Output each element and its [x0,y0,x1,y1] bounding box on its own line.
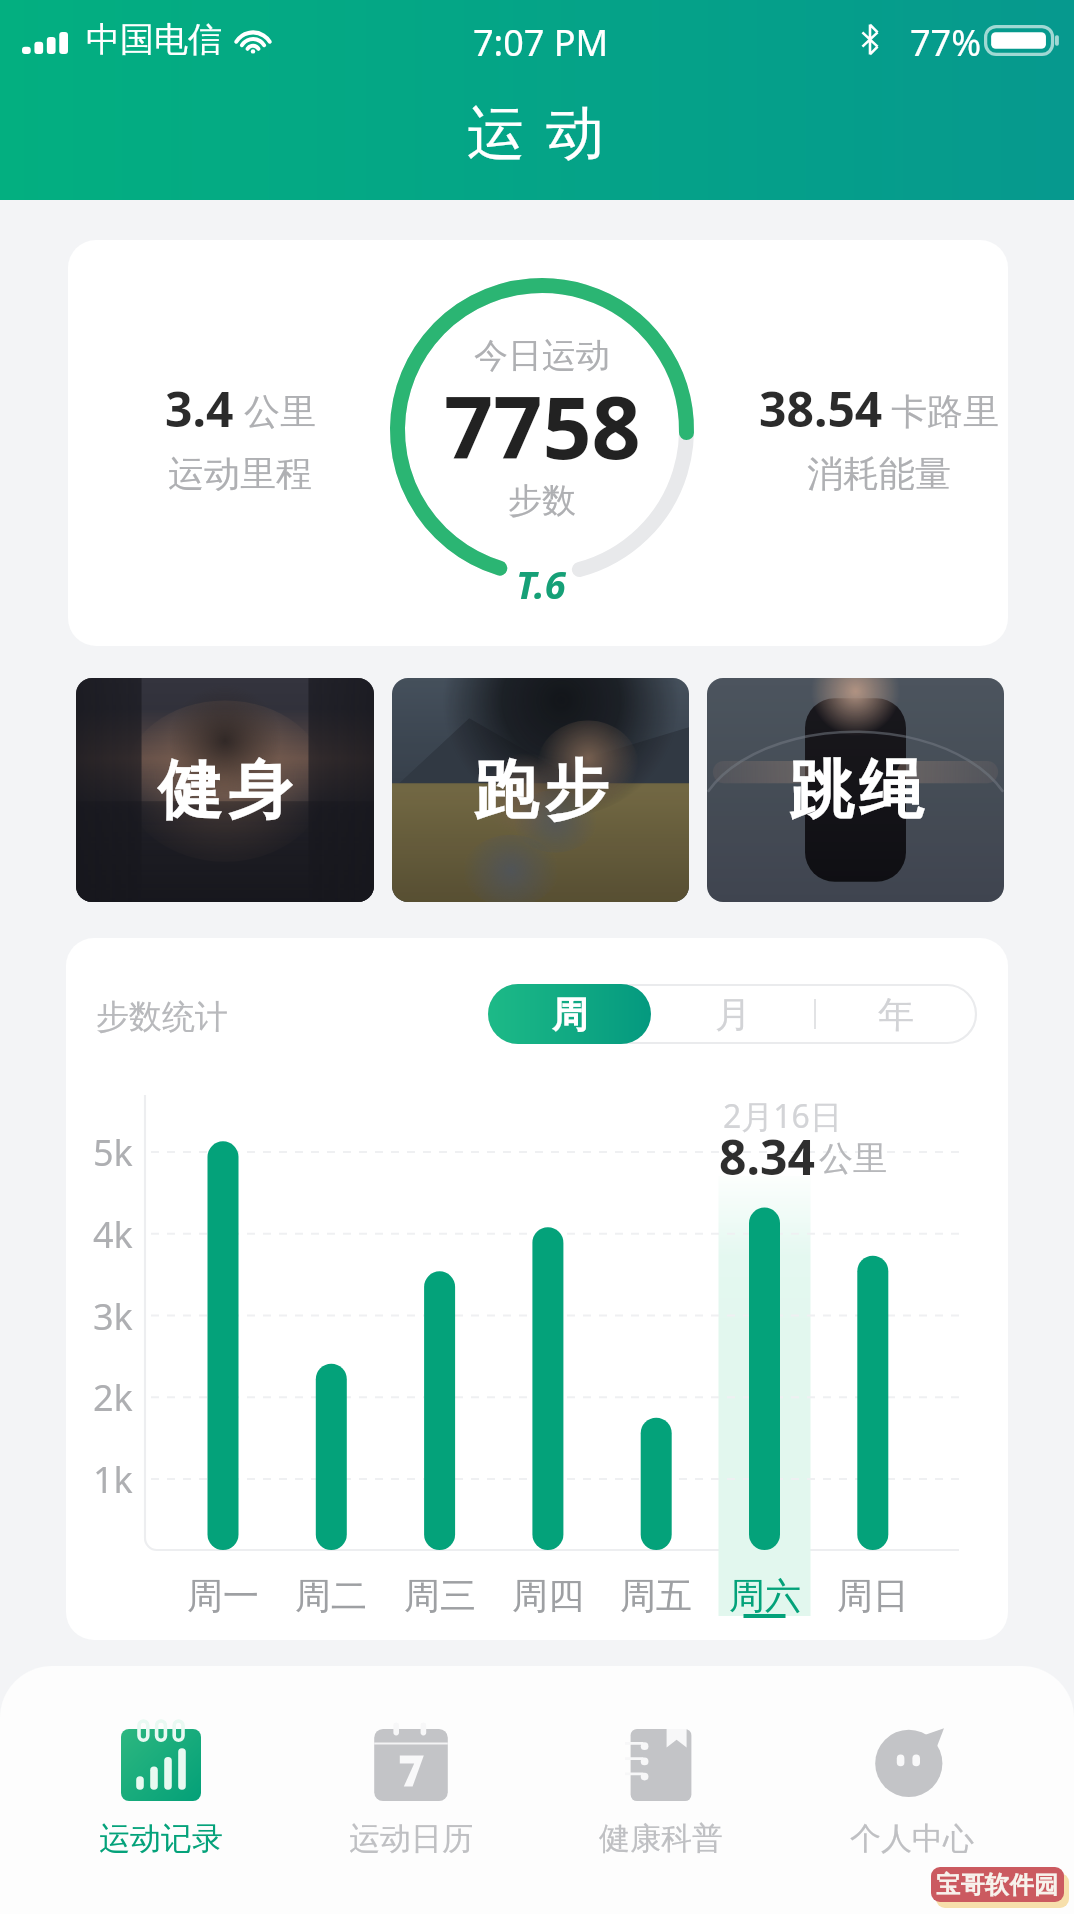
staticText: 7:07 PM [473,18,609,67]
staticText: 跑步 [471,750,611,831]
button[interactable]: 周 [488,984,651,1044]
staticText: 个人中心 [850,1819,974,1858]
staticText: 1k [93,1455,133,1504]
staticText: 消耗能量 [807,451,951,496]
staticText: 3k [93,1292,133,1341]
staticText: 公里 [244,389,316,434]
staticText: 卡路里 [891,389,999,434]
button[interactable]: 运动记录 [36,1721,286,1858]
staticText: 公里 [819,1137,887,1180]
other: 健康科普 [621,1721,701,1801]
staticText: 步数 [508,479,576,522]
button[interactable]: 运动日历 [286,1721,536,1858]
staticText: 38.54 [759,376,883,441]
staticText: 周四 [512,1573,584,1618]
staticText: 周 [552,992,588,1037]
other: 个人中心 [872,1721,952,1801]
staticText: 运动记录 [99,1819,223,1858]
staticText: 7758 [444,367,641,484]
staticText: 2k [93,1373,133,1422]
other: 运动记录 [121,1721,201,1801]
staticText: 运动日历 [349,1819,473,1858]
button[interactable]: 健身 [76,678,374,902]
staticText: 77% [910,18,982,67]
button[interactable]: 跑步 [392,678,689,902]
staticText: 周一 [187,1573,259,1618]
staticText: 运 动 [467,91,608,170]
staticText: 中国电信 [86,18,222,61]
staticText: 今日运动 [474,334,610,377]
staticText: 运动里程 [168,451,312,496]
button[interactable]: 跳绳 [707,678,1004,902]
staticText: 周五 [620,1573,692,1618]
button[interactable]: 健康科普 [536,1721,786,1858]
staticText: 3.4 [165,376,234,441]
staticText: 跳绳 [786,750,926,831]
staticText: 周六 [729,1573,801,1618]
staticText: 年 [878,992,914,1037]
button[interactable]: 个人中心 [787,1721,1037,1858]
staticText: 周二 [295,1573,367,1618]
button[interactable]: 今日运动 [68,240,1008,646]
staticText: 健康科普 [599,1819,723,1858]
staticText: 宝哥软件园 [936,1870,1059,1900]
button[interactable]: 年 [814,984,977,1044]
staticText: 2月16日 [723,1094,842,1138]
staticText: 5k [93,1128,133,1177]
button[interactable]: 月 [651,984,814,1044]
staticText: 周日 [837,1573,909,1618]
staticText: T.6 [516,558,566,610]
staticText: 周三 [404,1573,476,1618]
other: 运动日历 [371,1721,451,1801]
staticText: 4k [93,1210,133,1259]
staticText: 8.34 [719,1124,815,1189]
staticText: 健身 [155,750,295,831]
staticText: 步数统计 [96,996,228,1038]
staticText: 月 [715,992,751,1037]
